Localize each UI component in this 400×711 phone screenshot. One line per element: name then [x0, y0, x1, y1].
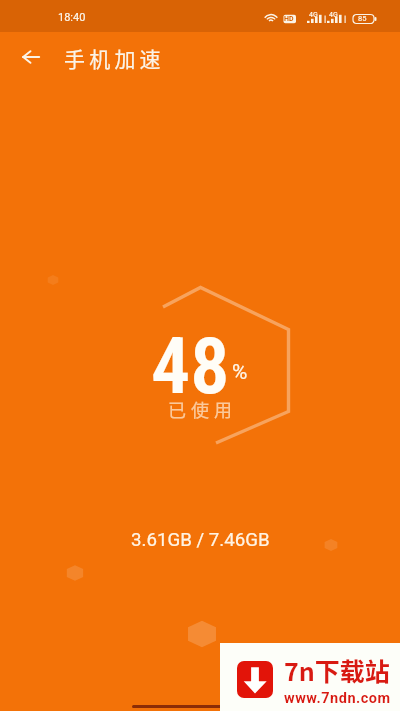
button[interactable]: Back: [13, 39, 49, 75]
staticText: 4G: [309, 11, 318, 19]
staticText: 18:40: [58, 11, 86, 24]
staticText: 手机加速: [64, 43, 165, 73]
staticText: %: [232, 360, 248, 385]
staticText: www.7ndn.com: [284, 690, 391, 707]
staticText: HD: [284, 15, 294, 23]
staticText: 48: [151, 321, 230, 412]
staticText: 85: [358, 14, 367, 23]
staticText: 7n下载站: [284, 652, 390, 688]
staticText: 3.61GB / 7.46GB: [131, 529, 270, 551]
staticText: 4G: [329, 11, 338, 19]
staticText: 已使用: [168, 396, 237, 422]
